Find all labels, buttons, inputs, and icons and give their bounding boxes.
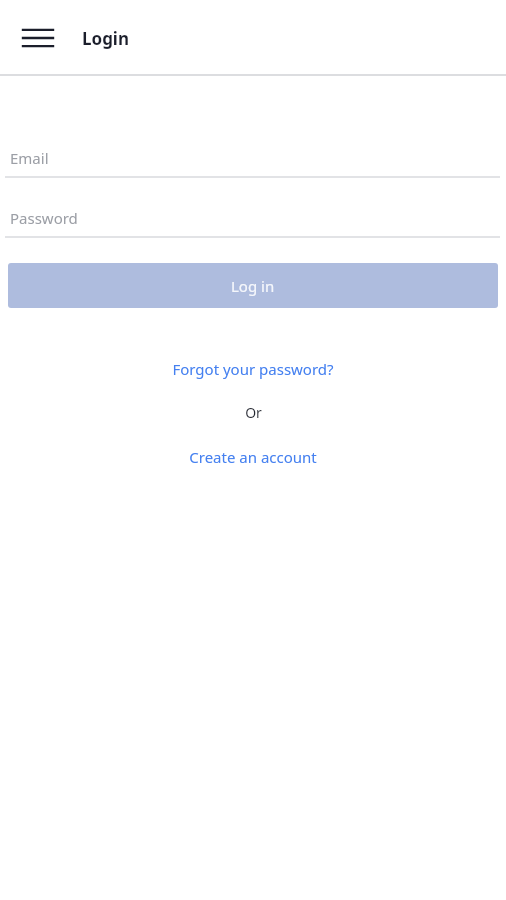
- staticText: Log in: [231, 276, 275, 296]
- button[interactable]: Forgot your password?: [162, 355, 344, 383]
- staticText: Email: [10, 148, 49, 168]
- button[interactable]: Create an account: [179, 443, 327, 471]
- staticText: Password: [10, 208, 78, 228]
- staticText: Login: [82, 27, 130, 50]
- button[interactable]: Open navigation menu: [16, 16, 60, 60]
- button[interactable]: Log in: [8, 263, 498, 308]
- button[interactable]: Password: [0, 200, 506, 238]
- button[interactable]: Email: [0, 140, 506, 178]
- staticText: Or: [245, 403, 262, 422]
- staticText: Create an account: [189, 447, 317, 467]
- staticText: Forgot your password?: [172, 359, 334, 379]
